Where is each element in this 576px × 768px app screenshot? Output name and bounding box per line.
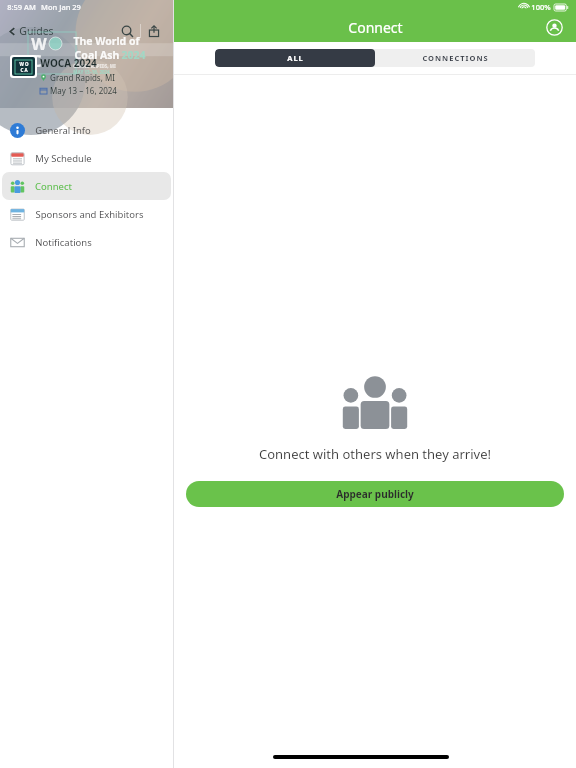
staticText: ALL — [287, 53, 304, 63]
button[interactable]: Guides — [6, 22, 56, 40]
staticText: Connect — [35, 180, 72, 193]
staticText: Connect — [348, 18, 403, 37]
staticText: My Schedule — [35, 152, 92, 165]
staticText: General Info — [35, 124, 91, 137]
staticText: Grand Rapids, MI — [50, 72, 115, 83]
button[interactable]: Notifications — [2, 228, 171, 256]
button[interactable]: Profile — [540, 13, 568, 41]
staticText: 8:59 AM — [7, 2, 36, 12]
staticText: GRAND RAPIDS, MI — [73, 63, 116, 69]
button[interactable]: Connect — [2, 172, 171, 200]
staticText: W O — [19, 61, 29, 67]
button[interactable]: ALL — [215, 49, 375, 67]
button[interactable]: Sponsors and Exhibitors — [2, 200, 171, 228]
staticText: WOCA 2024 — [40, 56, 97, 70]
staticText: 2024 — [121, 48, 146, 62]
staticText: Mon Jan 29 — [41, 2, 81, 12]
staticText: Coal Ash — [73, 48, 121, 62]
staticText: Guides — [19, 24, 54, 38]
staticText: CONNECTIONS — [422, 53, 489, 63]
button[interactable]: General Info — [2, 116, 171, 144]
staticText: C A — [20, 67, 28, 73]
staticText: Sponsors and Exhibitors — [35, 208, 144, 221]
staticText: 100% — [531, 2, 551, 12]
staticText: MAY 13–16, 2024 — [73, 69, 110, 75]
staticText: Notifications — [35, 236, 92, 249]
button[interactable]: Share — [141, 18, 167, 44]
button[interactable]: Search — [114, 18, 140, 44]
button[interactable]: Appear publicly — [186, 481, 564, 507]
staticText: Connect with others when they arrive! — [259, 445, 491, 463]
staticText: Appear publicly — [336, 487, 414, 501]
staticText: C — [31, 50, 42, 72]
staticText: W — [31, 33, 47, 55]
staticText: May 13 – 16, 2024 — [50, 85, 117, 96]
staticText: The World of — [73, 34, 140, 48]
button[interactable]: My Schedule — [2, 144, 171, 172]
button[interactable]: CONNECTIONS — [375, 49, 535, 67]
